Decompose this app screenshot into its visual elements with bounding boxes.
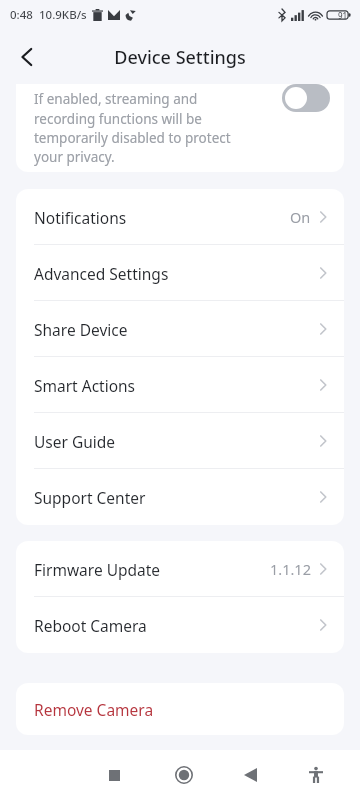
button[interactable]: Privacy mode toggle [282, 84, 330, 112]
staticText: Support Center [34, 487, 146, 508]
staticText: Notifications [34, 207, 127, 228]
button[interactable]: Support Center [16, 469, 344, 525]
button[interactable]: Back [5, 35, 49, 79]
staticText: 0:48 [10, 7, 33, 23]
staticText: Reboot Camera [34, 615, 147, 636]
staticText: On [290, 207, 311, 227]
button[interactable]: Home [160, 751, 208, 799]
button[interactable]: Smart Actions [16, 357, 344, 413]
staticText: User Guide [34, 431, 116, 452]
button[interactable]: Back [226, 751, 274, 799]
button[interactable]: Remove Camera [16, 683, 344, 735]
staticText: 10.9KB/s [39, 7, 87, 23]
button[interactable]: Advanced Settings [16, 245, 344, 301]
staticText: 91 [338, 10, 348, 21]
staticText: Remove Camera [34, 699, 154, 720]
button[interactable]: User Guide [16, 413, 344, 469]
staticText: Firmware Update [34, 559, 161, 580]
button[interactable]: Reboot Camera [16, 597, 344, 653]
button[interactable]: Share Device [16, 301, 344, 357]
button[interactable]: Firmware Update [16, 541, 344, 597]
staticText: Advanced Settings [34, 263, 169, 284]
staticText: Device Settings [114, 45, 246, 70]
staticText: Share Device [34, 319, 128, 340]
staticText: 1.1.12 [270, 559, 311, 579]
button[interactable]: Recents [90, 751, 138, 799]
staticText: If enabled, streaming and recording func… [34, 90, 239, 166]
button[interactable]: Notifications [16, 189, 344, 245]
staticText: Smart Actions [34, 375, 136, 396]
button[interactable]: Accessibility [292, 751, 340, 799]
